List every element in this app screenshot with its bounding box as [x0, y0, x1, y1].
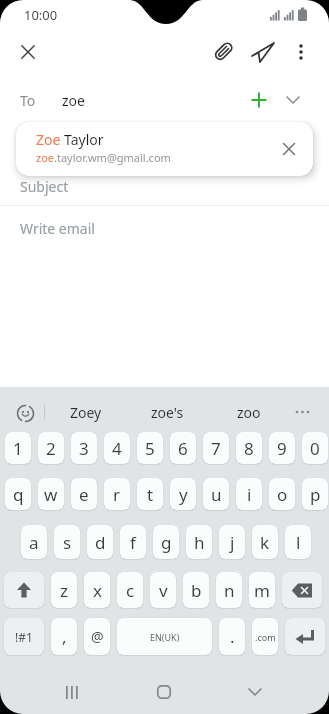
button[interactable]: [247, 36, 279, 68]
button[interactable]: [56, 676, 88, 708]
staticText: 5: [145, 437, 155, 460]
staticText: s: [63, 531, 72, 554]
staticText: 7: [211, 437, 221, 460]
staticText: u: [211, 483, 222, 506]
staticText: Subject: [20, 177, 69, 196]
button[interactable]: o: [269, 478, 295, 510]
button[interactable]: c: [117, 572, 143, 608]
button[interactable]: ,: [51, 618, 77, 655]
staticText: 8: [244, 437, 254, 460]
staticText: i: [247, 483, 252, 506]
button[interactable]: [13, 401, 37, 425]
button[interactable]: s: [54, 525, 80, 559]
staticText: t: [147, 483, 154, 506]
button[interactable]: q: [5, 478, 31, 510]
button[interactable]: f: [120, 525, 146, 559]
staticText: e: [79, 483, 89, 506]
button[interactable]: t: [137, 478, 163, 510]
button[interactable]: [285, 36, 317, 68]
staticText: x: [93, 579, 102, 602]
button[interactable]: [148, 676, 180, 708]
staticText: 2: [46, 437, 56, 460]
button[interactable]: [277, 84, 309, 116]
staticText: .com: [255, 631, 276, 643]
staticText: y: [179, 483, 188, 506]
button[interactable]: [4, 572, 44, 608]
staticText: z: [60, 579, 68, 602]
button[interactable]: [287, 400, 319, 424]
staticText: zoe: [62, 91, 85, 110]
staticText: g: [161, 531, 172, 554]
staticText: 10:00: [24, 6, 58, 24]
button[interactable]: u: [203, 478, 229, 510]
button[interactable]: Zoe Taylor: [16, 122, 313, 176]
button[interactable]: .com: [252, 618, 278, 655]
staticText: j: [230, 531, 235, 554]
button[interactable]: 1: [5, 432, 31, 464]
button[interactable]: e: [71, 478, 97, 510]
button[interactable]: !#1: [4, 618, 44, 655]
staticText: 1: [13, 437, 23, 460]
staticText: k: [260, 531, 270, 554]
button[interactable]: .: [219, 618, 245, 655]
button[interactable]: g: [153, 525, 179, 559]
button[interactable]: [239, 676, 271, 708]
button[interactable]: n: [216, 572, 242, 608]
button[interactable]: h: [186, 525, 212, 559]
staticText: Zoey: [70, 403, 102, 422]
button[interactable]: j: [219, 525, 245, 559]
button[interactable]: zoo: [218, 398, 280, 426]
button[interactable]: 0: [302, 432, 328, 464]
button[interactable]: y: [170, 478, 196, 510]
staticText: 0: [310, 437, 320, 460]
button[interactable]: b: [183, 572, 209, 608]
button[interactable]: 9: [269, 432, 295, 464]
button[interactable]: x: [84, 572, 110, 608]
button[interactable]: v: [150, 572, 176, 608]
button[interactable]: 7: [203, 432, 229, 464]
staticText: r: [113, 483, 121, 506]
button[interactable]: a: [21, 525, 47, 559]
button[interactable]: l: [285, 525, 311, 559]
button[interactable]: 4: [104, 432, 130, 464]
button[interactable]: zoe's: [136, 398, 198, 426]
button[interactable]: z: [51, 572, 77, 608]
staticText: d: [95, 531, 106, 554]
staticText: zoo: [237, 403, 261, 422]
button[interactable]: [282, 572, 322, 608]
button[interactable]: [273, 133, 305, 165]
button[interactable]: w: [38, 478, 64, 510]
button[interactable]: 5: [137, 432, 163, 464]
button[interactable]: Zoey: [55, 398, 117, 426]
staticText: @: [91, 627, 104, 646]
button[interactable]: r: [104, 478, 130, 510]
staticText: 9: [277, 437, 287, 460]
staticText: p: [310, 483, 321, 506]
button[interactable]: p: [302, 478, 328, 510]
button[interactable]: k: [252, 525, 278, 559]
button[interactable]: 8: [236, 432, 262, 464]
button[interactable]: 6: [170, 432, 196, 464]
button[interactable]: @: [84, 618, 110, 655]
button[interactable]: 2: [38, 432, 64, 464]
staticText: w: [44, 483, 58, 506]
staticText: a: [29, 531, 39, 554]
button[interactable]: [207, 36, 239, 68]
staticText: To: [20, 91, 36, 110]
staticText: o: [277, 483, 288, 506]
staticText: .: [230, 625, 235, 648]
button[interactable]: [243, 84, 275, 116]
staticText: EN(UK): [150, 631, 180, 643]
button[interactable]: [12, 36, 44, 68]
button[interactable]: [285, 618, 325, 655]
staticText: v: [159, 579, 168, 602]
staticText: 6: [178, 437, 188, 460]
button[interactable]: EN(UK): [117, 618, 212, 655]
staticText: h: [194, 531, 205, 554]
button[interactable]: d: [87, 525, 113, 559]
button[interactable]: i: [236, 478, 262, 510]
button[interactable]: 3: [71, 432, 97, 464]
button[interactable]: m: [249, 572, 275, 608]
staticText: ,: [62, 625, 67, 648]
staticText: Zoe Taylor: [36, 130, 104, 149]
